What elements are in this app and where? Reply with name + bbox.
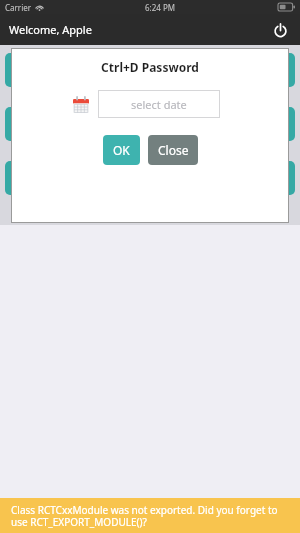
staticText: Welcome, Apple xyxy=(9,22,92,37)
staticText: Ctrl+D Password xyxy=(101,59,199,75)
button[interactable]: Class RCTCxxModule was not exported. Did… xyxy=(0,498,300,533)
staticText: Carrier xyxy=(5,2,32,13)
staticText: select date xyxy=(131,97,187,112)
staticText: Close xyxy=(158,142,189,158)
button[interactable]: Log out xyxy=(268,18,292,42)
staticText: Class RCTCxxModule was not exported. Did… xyxy=(11,503,290,529)
button[interactable] xyxy=(5,107,295,141)
button[interactable]: OK xyxy=(103,135,140,165)
button[interactable] xyxy=(5,53,295,87)
staticText: 6:24 PM xyxy=(145,2,176,13)
button[interactable] xyxy=(5,161,295,195)
button[interactable]: select date xyxy=(98,90,220,118)
button[interactable]: Close xyxy=(148,135,198,165)
button[interactable]: Open calendar xyxy=(72,95,90,113)
staticText: OK xyxy=(113,142,130,158)
